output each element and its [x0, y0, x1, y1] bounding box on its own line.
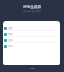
staticText: 设置	[8, 27, 13, 30]
staticText: 导出	[8, 45, 13, 48]
staticText: 消息	[8, 33, 13, 36]
staticText: 轻松制作聊天截图	[23, 10, 41, 13]
button[interactable]: 主题	[3, 37, 60, 43]
staticText: 对话生成器	[23, 5, 41, 10]
button[interactable]: 消息	[3, 31, 60, 37]
button[interactable]: 导出	[3, 43, 60, 49]
staticText: 主题	[8, 39, 13, 42]
button[interactable]: 设置	[3, 25, 60, 31]
